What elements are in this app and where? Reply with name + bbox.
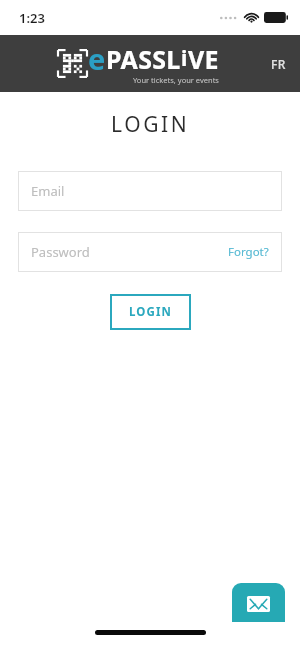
button[interactable]: Password xyxy=(18,232,282,272)
staticText: PASSL xyxy=(106,42,181,76)
staticText: Email xyxy=(31,182,65,200)
staticText: 1:23 xyxy=(19,9,45,27)
button[interactable]: FR xyxy=(257,46,300,82)
staticText: Forgot? xyxy=(228,244,269,260)
staticText: FR xyxy=(271,56,286,72)
staticText: i xyxy=(181,44,188,73)
staticText: e xyxy=(88,39,106,78)
staticText: LOGIN xyxy=(111,110,190,139)
staticText: LOGIN xyxy=(129,304,172,320)
button[interactable]: Email xyxy=(18,171,282,211)
button[interactable]: LOGIN xyxy=(110,294,191,330)
staticText: Password xyxy=(31,243,90,261)
button[interactable]: Contact us xyxy=(232,583,285,636)
button[interactable]: Forgot? xyxy=(228,244,269,260)
staticText: Your tickets, your events xyxy=(133,75,219,85)
staticText: VE xyxy=(188,42,219,76)
